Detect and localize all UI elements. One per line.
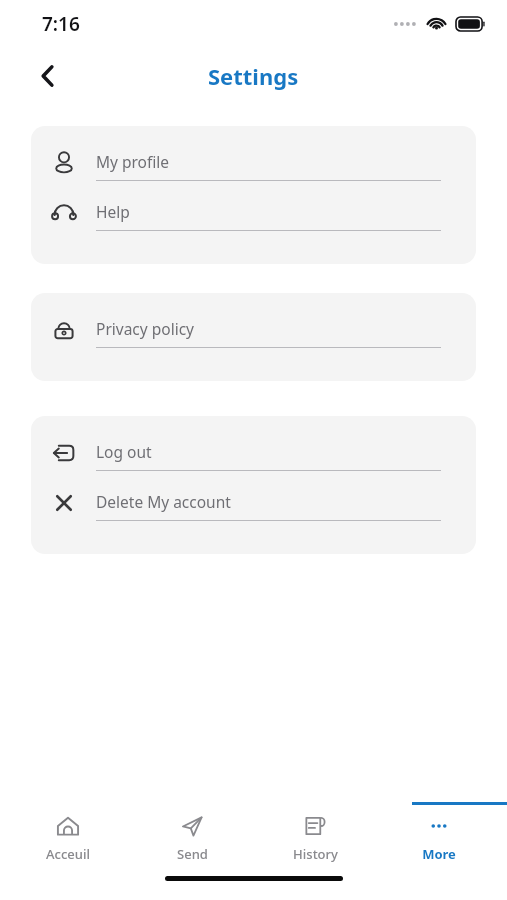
staticText: Help	[96, 201, 130, 222]
button[interactable]: Privacy policy	[31, 305, 476, 355]
button[interactable]: Back	[26, 54, 70, 98]
staticText: My profile	[96, 151, 170, 172]
staticText: Send	[177, 845, 208, 863]
button[interactable]: History	[260, 814, 370, 863]
staticText: Log out	[96, 441, 152, 462]
button[interactable]: Delete My account	[31, 478, 476, 528]
staticText: 7:16	[42, 11, 80, 37]
staticText: More	[422, 845, 456, 863]
button[interactable]: More	[384, 814, 494, 863]
staticText: Settings	[208, 61, 299, 91]
button[interactable]: Acceuil	[13, 814, 123, 863]
button[interactable]: Log out	[31, 428, 476, 478]
staticText: Privacy policy	[96, 318, 194, 339]
button[interactable]: Help	[31, 188, 476, 238]
staticText: Delete My account	[96, 491, 231, 512]
button[interactable]: Send	[137, 814, 247, 863]
button[interactable]: My profile	[31, 138, 476, 188]
staticText: Acceuil	[46, 845, 90, 863]
staticText: History	[293, 845, 338, 863]
